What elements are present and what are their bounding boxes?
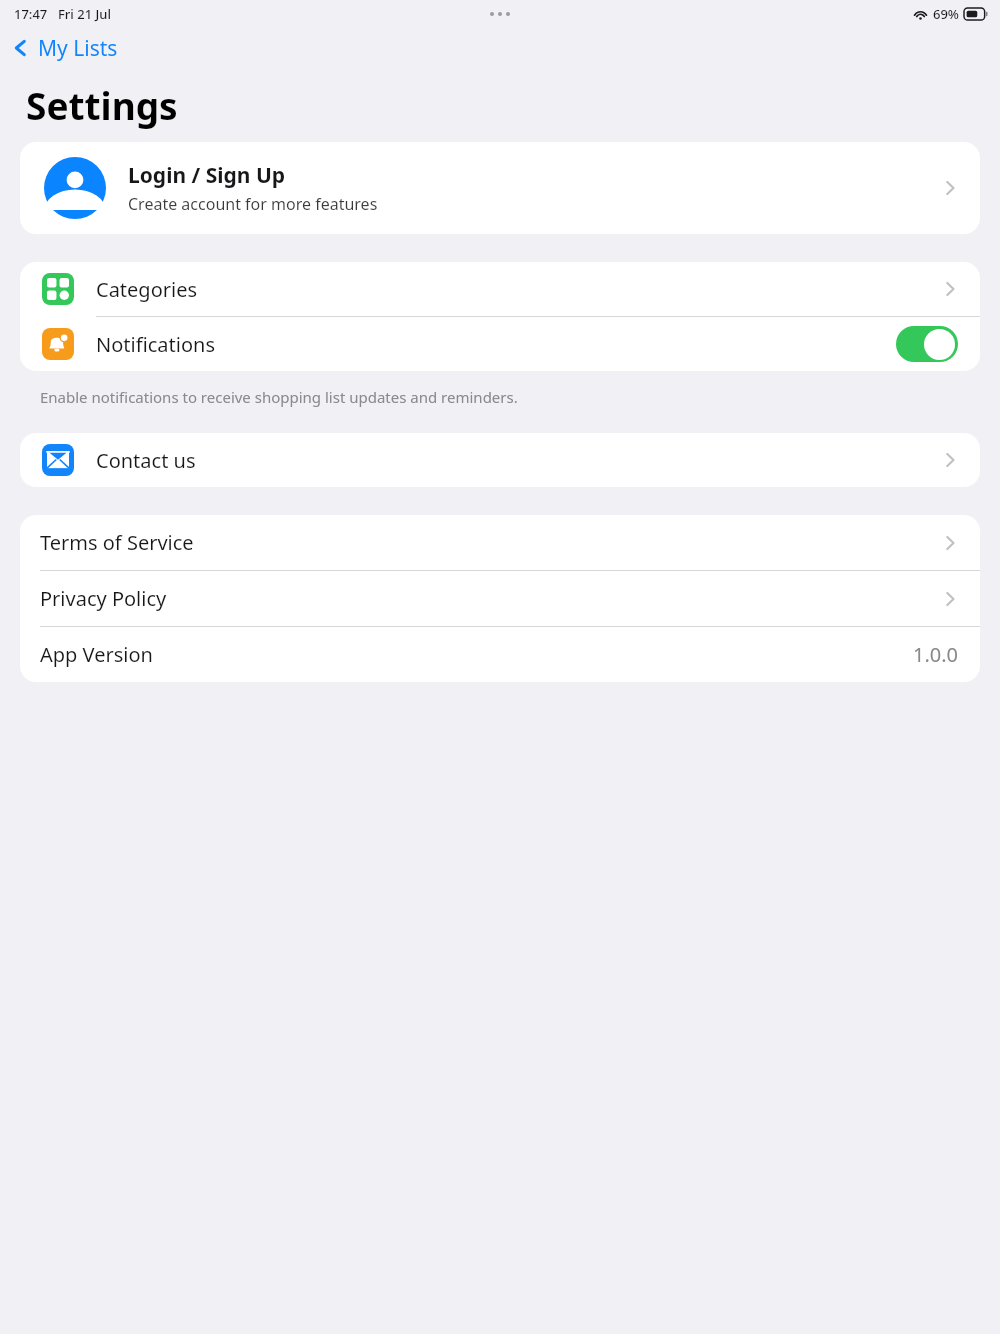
button[interactable]: Toggle notifications — [896, 326, 958, 362]
staticText: Notifications — [96, 331, 215, 358]
button[interactable]: Contact us — [20, 433, 980, 487]
staticText: App Version — [40, 641, 153, 668]
button[interactable]: App Version — [20, 627, 980, 682]
staticText: Create account for more features — [128, 193, 378, 215]
staticText: 1.0.0 — [912, 641, 958, 668]
button[interactable]: Categories — [20, 262, 980, 316]
button[interactable]: Terms of Service — [20, 515, 980, 570]
button[interactable]: Login / Sign Up — [20, 142, 980, 234]
staticText: Privacy Policy — [40, 585, 167, 612]
button[interactable]: Notifications — [20, 317, 980, 371]
staticText: My Lists — [38, 34, 118, 63]
staticText: Settings — [26, 80, 178, 130]
staticText: 17:47 — [14, 5, 48, 23]
staticText: Enable notifications to receive shopping… — [40, 387, 518, 407]
staticText: Contact us — [96, 447, 196, 474]
staticText: Categories — [96, 276, 198, 303]
staticText: Fri 21 Jul — [58, 5, 111, 23]
staticText: Login / Sign Up — [128, 161, 286, 190]
button[interactable]: Privacy Policy — [20, 571, 980, 626]
staticText: Terms of Service — [40, 529, 194, 556]
staticText: 69% — [933, 5, 959, 23]
button[interactable]: My Lists — [12, 28, 118, 68]
